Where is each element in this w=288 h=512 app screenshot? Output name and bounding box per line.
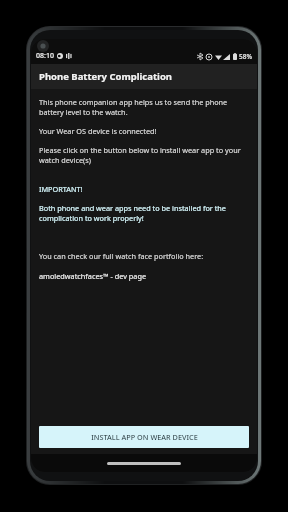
staticText: INSTALL APP ON WEAR DEVICE <box>91 432 198 442</box>
staticText: Both phone and wear apps need to be inst… <box>39 203 247 223</box>
button[interactable]: amoledwatchfaces™ - dev page <box>39 271 147 281</box>
staticText: You can check our full watch face portfo… <box>39 251 204 261</box>
staticText: 58% <box>239 52 252 61</box>
button[interactable]: INSTALL APP ON WEAR DEVICE <box>39 426 249 448</box>
staticText: 08:10 <box>36 51 54 61</box>
staticText: This phone companion app helps us to sen… <box>39 97 247 117</box>
staticText: Phone Battery Complication <box>39 70 173 83</box>
staticText: Please click on the button below to inst… <box>39 145 247 165</box>
staticText: Your Wear OS device is connected! <box>39 126 157 136</box>
staticText: IMPORTANT! <box>39 184 83 194</box>
staticText: amoledwatchfaces™ - dev page <box>39 271 147 281</box>
